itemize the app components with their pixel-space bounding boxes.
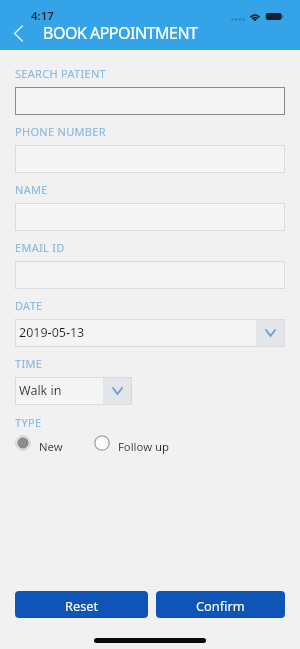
staticText: 4:17 (31, 8, 54, 24)
staticText: SEARCH PATIENT (15, 66, 106, 81)
staticText: TIME (15, 356, 43, 371)
staticText: BOOK APPOINTMENT (43, 22, 198, 44)
button[interactable]: Follow up (94, 435, 169, 451)
staticText: PHONE NUMBER (15, 124, 106, 139)
button[interactable]: Walk in (15, 377, 132, 405)
staticText: Confirm (196, 597, 245, 614)
staticText: Walk in (19, 382, 103, 399)
button[interactable]: Reset (15, 591, 148, 618)
button[interactable]: New (15, 435, 63, 451)
staticText: Reset (65, 597, 99, 614)
staticText: Follow up (118, 439, 169, 454)
staticText: New (39, 439, 63, 454)
staticText: NAME (15, 182, 48, 197)
staticText: EMAIL ID (15, 240, 65, 255)
button[interactable]: 2019-05-13 (15, 319, 285, 347)
button[interactable] (15, 261, 285, 289)
staticText: 2019-05-13 (19, 324, 256, 341)
button[interactable]: Confirm (156, 591, 285, 618)
button[interactable] (15, 145, 285, 173)
button[interactable]: Back (3, 19, 33, 47)
button[interactable] (15, 87, 285, 115)
staticText: TYPE (15, 415, 42, 430)
staticText: DATE (15, 298, 43, 313)
button[interactable] (15, 203, 285, 231)
